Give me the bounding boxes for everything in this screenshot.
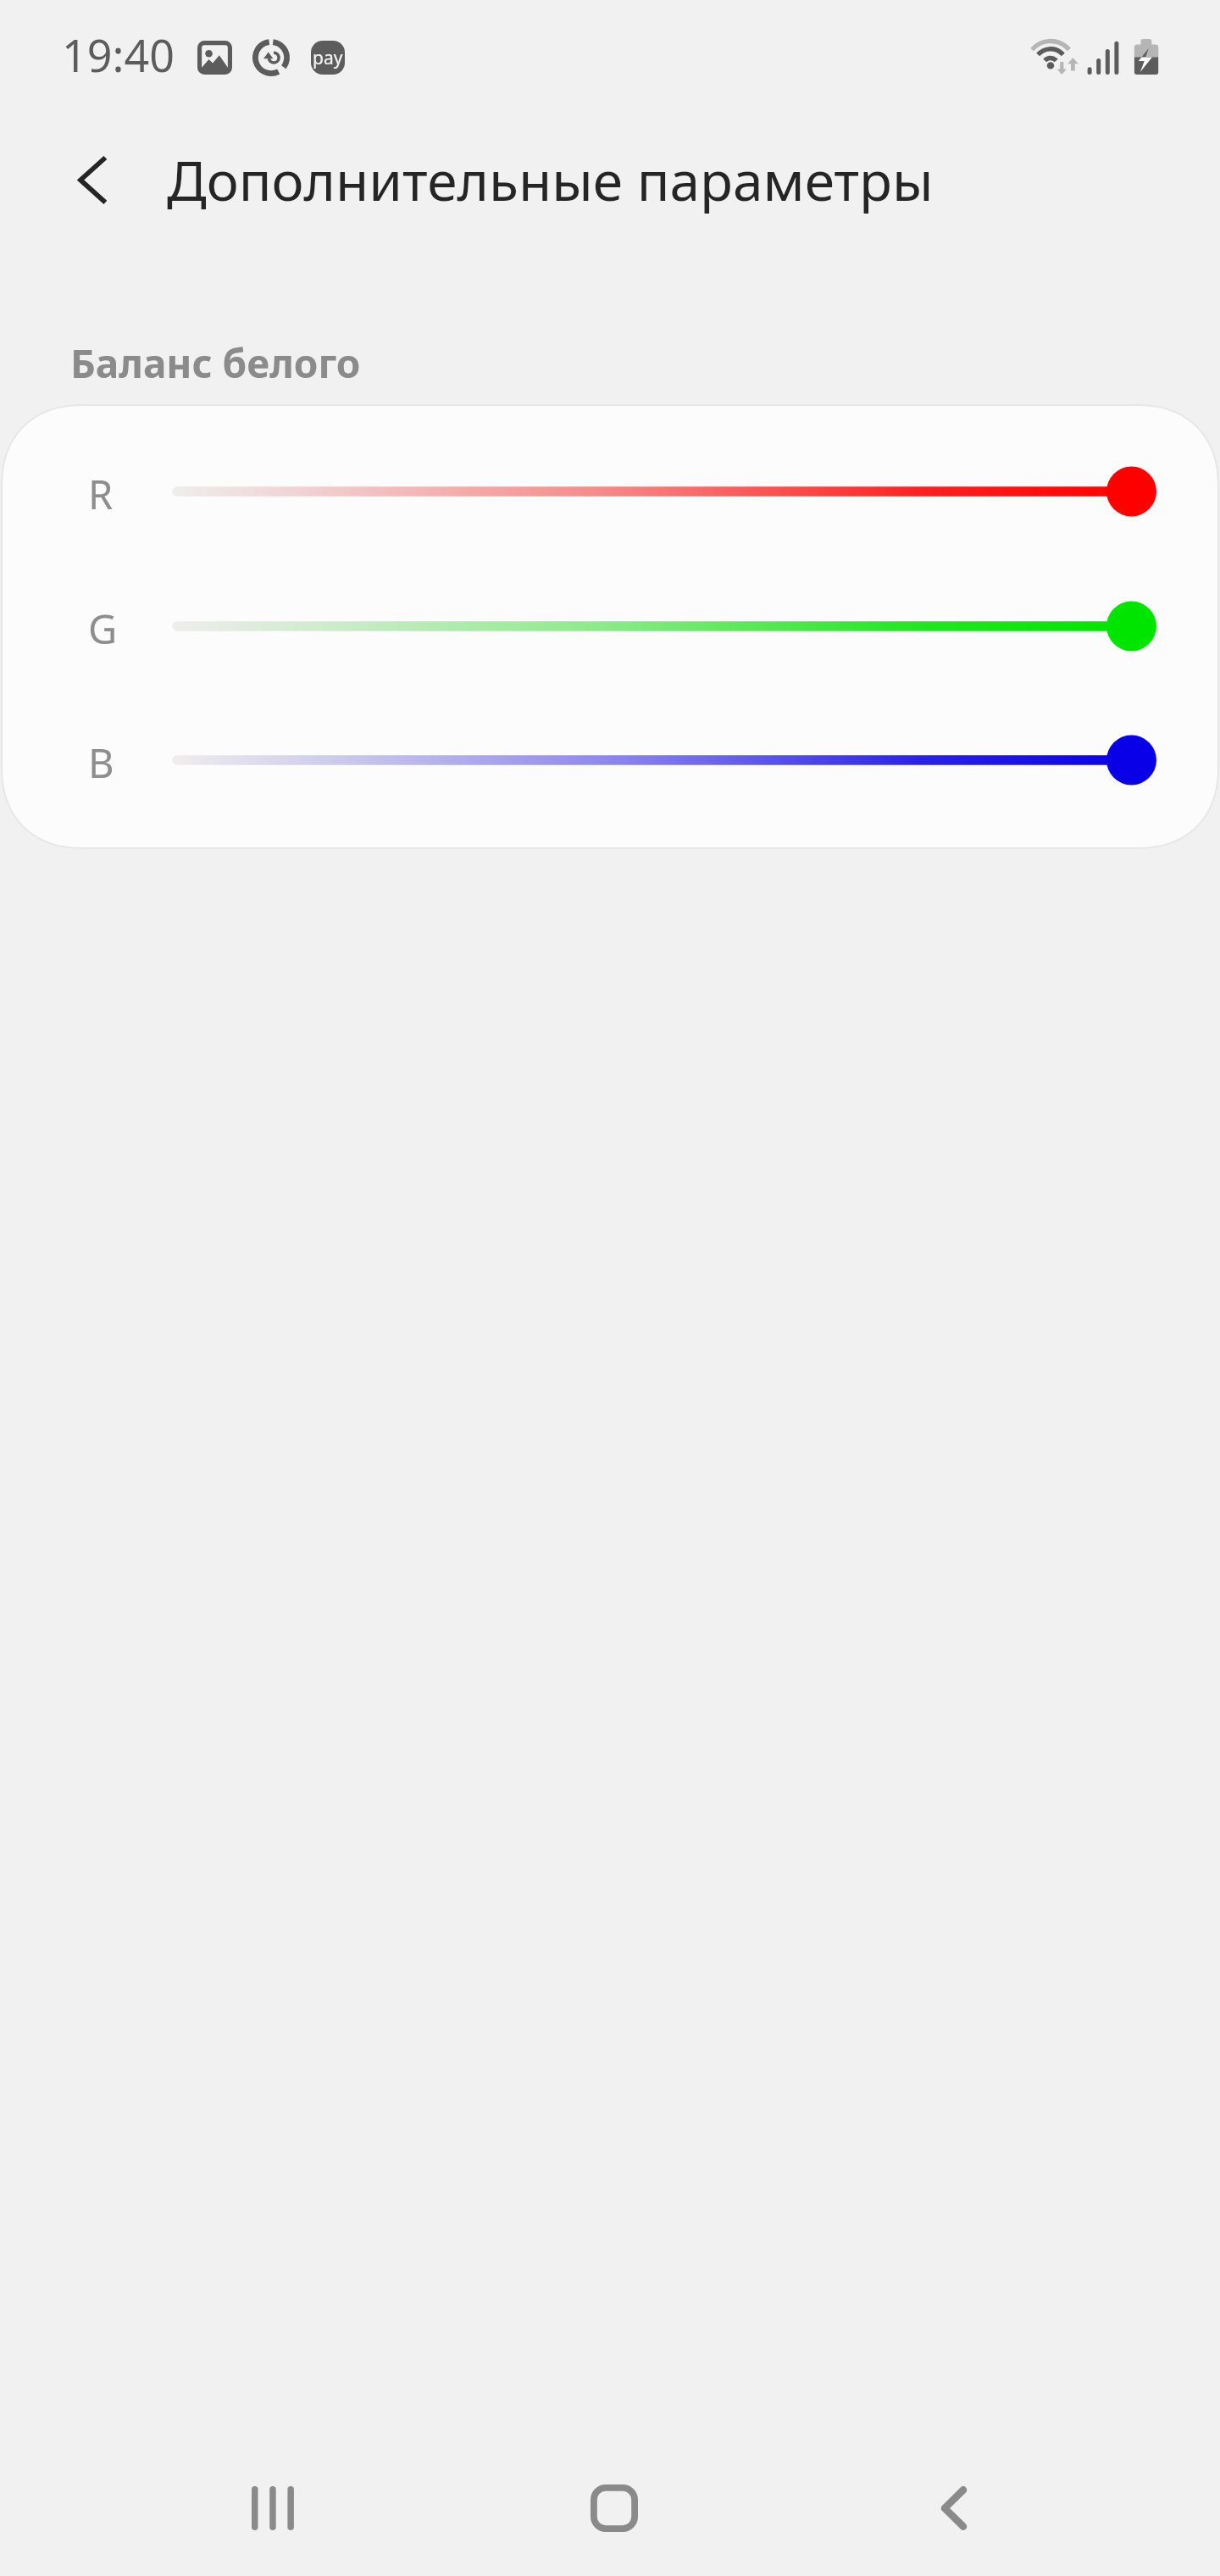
button[interactable]: Recent apps <box>205 2445 341 2572</box>
staticText: Баланс белого <box>70 336 361 390</box>
button[interactable]: R <box>1 447 1219 536</box>
staticText: pay <box>313 46 343 70</box>
staticText: B <box>88 736 114 790</box>
button[interactable]: Back <box>885 2445 1021 2572</box>
button[interactable]: Home <box>546 2445 682 2572</box>
button[interactable]: Back <box>32 129 134 230</box>
staticText: 19:40 <box>62 25 175 85</box>
staticText: Дополнительные параметры <box>167 143 934 217</box>
staticText: G <box>88 602 118 656</box>
staticText: R <box>88 467 114 521</box>
button[interactable]: G <box>1 582 1219 670</box>
button[interactable]: B <box>1 716 1219 804</box>
